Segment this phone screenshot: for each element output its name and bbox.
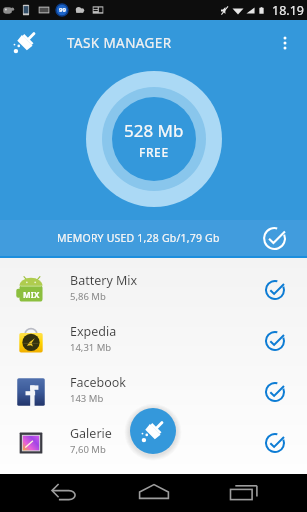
button[interactable]: More options — [267, 25, 303, 61]
staticText: 528 Mb — [124, 119, 184, 142]
button[interactable]: MIX — [0, 264, 307, 315]
staticText: Battery Mix — [70, 272, 138, 289]
button[interactable]: Facebook — [0, 366, 307, 417]
staticText: 18.19 — [272, 2, 304, 19]
button[interactable]: Back — [44, 474, 84, 512]
staticText: 5,86 Mb — [70, 290, 106, 303]
staticText: Facebook — [70, 374, 127, 391]
staticText: 143 Mb — [70, 392, 104, 405]
staticText: MEMORY USED 1,28 Gb/1,79 Gb — [57, 231, 220, 245]
button[interactable]: MEMORY USED 1,28 Gb/1,79 Gb — [0, 220, 307, 258]
button[interactable]: Recent apps — [224, 474, 264, 512]
staticText: Galerie — [70, 425, 112, 442]
staticText: Expedia — [70, 323, 117, 340]
staticText: FREE — [139, 144, 169, 160]
button[interactable]: App icon — [7, 25, 43, 61]
staticText: 99 — [59, 6, 66, 14]
button[interactable]: Galerie — [0, 417, 307, 468]
button[interactable]: Expedia — [0, 315, 307, 366]
staticText: TASK MANAGER — [67, 34, 172, 52]
staticText: MIX — [23, 289, 40, 300]
button[interactable]: Home — [134, 474, 174, 512]
staticText: 14,31 Mb — [70, 341, 112, 354]
staticText: 7,60 Mb — [70, 443, 106, 456]
button[interactable]: Clean memory — [130, 408, 176, 454]
